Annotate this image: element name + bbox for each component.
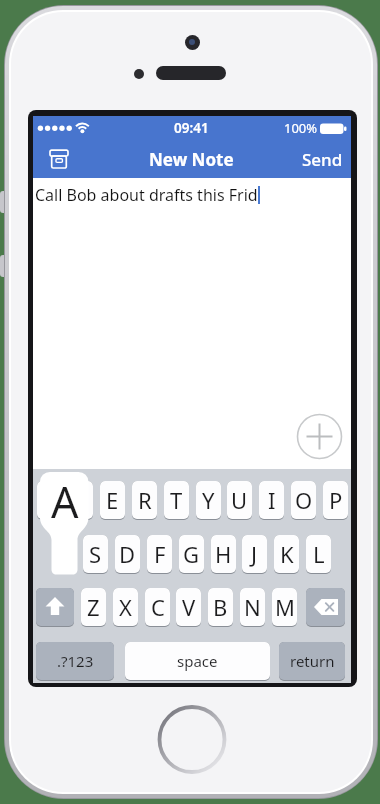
button[interactable]: New Note (33, 147, 349, 171)
button[interactable]: L (306, 535, 331, 573)
button[interactable] (68, 481, 93, 519)
button[interactable]: O (291, 481, 316, 519)
staticText: F (154, 539, 166, 569)
button[interactable]: Send (295, 147, 343, 171)
staticText: 100% (284, 119, 318, 137)
staticText: K (280, 539, 294, 569)
staticText: O (295, 485, 313, 515)
staticText: U (231, 485, 248, 515)
button[interactable]: V (176, 588, 201, 626)
staticText: V (182, 592, 196, 622)
button[interactable]: E (100, 481, 125, 519)
staticText: L (313, 539, 325, 569)
button[interactable]: Z (81, 588, 106, 626)
staticText: B (213, 592, 228, 622)
staticText: Y (202, 485, 215, 515)
button[interactable]: H (211, 535, 236, 573)
button[interactable]: N (240, 588, 265, 626)
staticText: Call Bob about drafts this Frid (35, 184, 258, 206)
staticText: Z (87, 592, 100, 622)
button[interactable]: S (83, 535, 108, 573)
button[interactable]: .?123 (36, 642, 114, 680)
staticText: N (244, 592, 261, 622)
staticText: X (119, 592, 132, 622)
staticText: J (251, 539, 258, 569)
button[interactable]: P (323, 481, 348, 519)
button[interactable]: X (113, 588, 138, 626)
staticText: R (138, 485, 152, 515)
staticText: H (215, 539, 232, 569)
button[interactable]: D (115, 535, 140, 573)
button[interactable]: I (259, 481, 284, 519)
button[interactable]: T (164, 481, 189, 519)
staticText: M (275, 592, 295, 622)
button[interactable]: M (272, 588, 297, 626)
button[interactable]: K (274, 535, 299, 573)
staticText: I (268, 485, 276, 515)
button[interactable]: Y (196, 481, 221, 519)
button[interactable]: space (125, 642, 270, 680)
staticText: Send (302, 148, 343, 171)
button[interactable] (157, 705, 227, 775)
staticText: G (183, 539, 200, 569)
staticText: S (89, 539, 102, 569)
staticText: T (170, 485, 183, 515)
staticText: New Note (149, 148, 234, 171)
staticText: space (177, 651, 218, 671)
button[interactable]: R (132, 481, 157, 519)
staticText: A (51, 472, 79, 523)
button[interactable]: U (227, 481, 252, 519)
staticText: E (106, 485, 119, 515)
staticText: .?123 (57, 651, 94, 671)
button[interactable] (37, 481, 62, 519)
button[interactable]: F (147, 535, 172, 573)
button[interactable]: B (208, 588, 233, 626)
staticText: D (119, 539, 136, 569)
staticText: return (290, 651, 335, 671)
button[interactable] (306, 588, 345, 626)
button[interactable] (36, 588, 74, 626)
staticText: P (329, 485, 343, 515)
button[interactable] (295, 412, 345, 462)
staticText: C (151, 592, 165, 622)
button[interactable]: C (145, 588, 170, 626)
staticText: 09:41 (174, 119, 209, 137)
button[interactable]: G (179, 535, 204, 573)
button[interactable]: J (242, 535, 267, 573)
button[interactable]: return (279, 642, 345, 680)
